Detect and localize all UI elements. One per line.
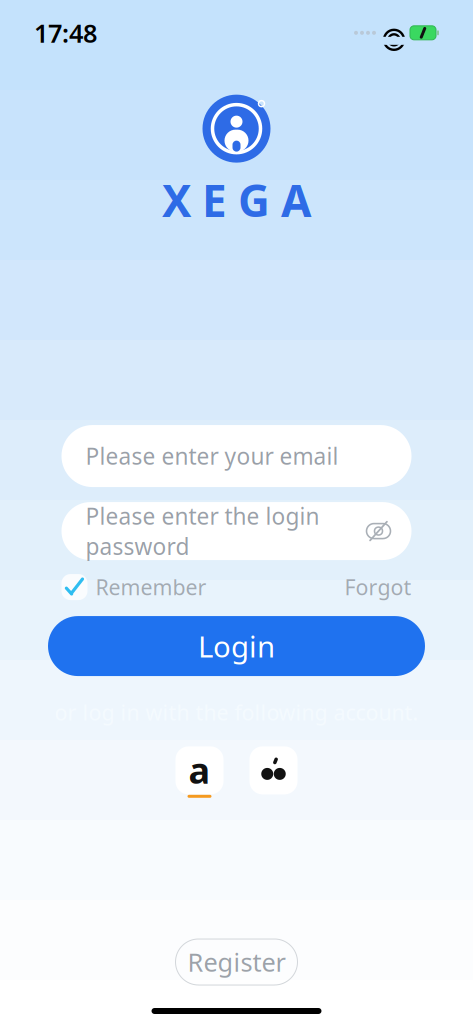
staticText: Please enter your email	[85, 441, 338, 471]
staticText: Forgot	[344, 573, 411, 601]
staticText: 17:48	[34, 16, 97, 50]
button[interactable]: Forgot	[344, 573, 411, 601]
button[interactable]: Sign in with Apple	[249, 746, 297, 794]
button[interactable]: Login	[48, 616, 425, 676]
staticText: Remember	[95, 573, 206, 601]
staticText: a	[188, 746, 210, 794]
button[interactable]: Register	[175, 939, 297, 985]
button[interactable]: Remember	[61, 573, 206, 601]
staticText: X E G A	[162, 171, 311, 229]
button[interactable]: Show password	[361, 514, 395, 548]
staticText: Login	[198, 627, 275, 666]
button[interactable]: Sign in with Amazon	[175, 746, 223, 794]
staticText: Please enter the login password	[85, 501, 319, 561]
staticText: Register	[187, 945, 285, 979]
